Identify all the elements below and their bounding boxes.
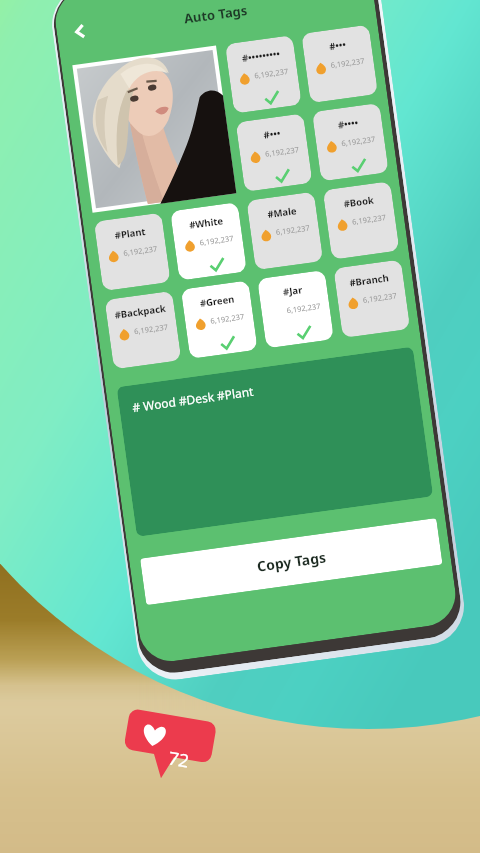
staticText: 6,192,237 [254, 66, 290, 81]
staticText: #Branch [349, 271, 390, 289]
staticText: 6,192,237 [210, 311, 246, 326]
staticText: 6,192,237 [341, 134, 377, 148]
button[interactable]: #Jar [257, 270, 334, 348]
button[interactable]: #••• [301, 25, 378, 103]
staticText: #Jar [282, 283, 304, 299]
staticText: 6,192,237 [330, 55, 366, 70]
staticText: 6,192,237 [286, 301, 322, 315]
staticText: Auto Tags [183, 1, 249, 27]
staticText: #White [188, 214, 225, 232]
staticText: #Green [199, 292, 235, 310]
button[interactable]: #Branch [333, 259, 410, 338]
button[interactable]: #Male [246, 192, 323, 270]
staticText: #••••••••• [241, 47, 281, 65]
button[interactable]: #••• [236, 113, 312, 192]
staticText: 6,192,237 [133, 322, 169, 336]
button[interactable]: #••••••••• [225, 35, 302, 114]
staticText: 6,192,237 [199, 233, 235, 248]
staticText: Copy Tags [256, 547, 328, 576]
button[interactable]: Back [65, 16, 94, 46]
staticText: # Wood #Desk #Plant [131, 383, 254, 415]
staticText: #Book [343, 193, 375, 211]
staticText: 6,192,237 [123, 243, 159, 258]
button[interactable]: #Green [181, 280, 258, 359]
staticText: #Backpack [114, 302, 167, 322]
staticText: #•••• [337, 116, 360, 132]
staticText: 6,192,237 [362, 290, 398, 305]
staticText: #••• [328, 38, 347, 53]
button[interactable]: #•••• [312, 103, 389, 181]
staticText: 72 [166, 745, 191, 774]
button[interactable]: Copy Tags [140, 518, 443, 605]
staticText: 6,192,237 [351, 212, 387, 227]
button[interactable]: #Backpack [104, 291, 181, 369]
button[interactable]: #Book [323, 181, 400, 260]
staticText: #••• [263, 127, 281, 142]
other: 72 likes [121, 722, 215, 777]
staticText: 6,192,237 [275, 222, 311, 237]
staticText: #Male [266, 204, 298, 221]
button[interactable]: #White [170, 202, 247, 281]
staticText: 6,192,237 [264, 144, 300, 159]
button[interactable]: #Plant [94, 212, 171, 291]
staticText: #Plant [114, 225, 146, 242]
